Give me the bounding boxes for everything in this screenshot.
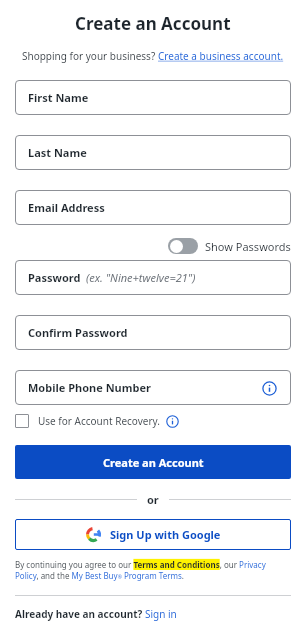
button[interactable]: Show Passwords	[15, 238, 291, 254]
staticText: or	[147, 492, 159, 507]
button[interactable]: Create a business account.	[158, 49, 284, 63]
button[interactable]: Account recovery information	[165, 414, 179, 428]
button[interactable]: Use for Account Recovery.	[15, 414, 179, 428]
staticText: Password (ex. "Nine+twelve=21")	[28, 270, 278, 285]
staticText: Email Address	[28, 200, 278, 215]
button[interactable]: More information	[260, 379, 278, 397]
button[interactable]: Email Address	[15, 190, 291, 225]
staticText: Use for Account Recovery.	[38, 414, 160, 428]
staticText: Confirm Password	[28, 325, 278, 340]
staticText: By continuing you agree to our Terms and…	[15, 559, 291, 582]
button[interactable]: Last Name	[15, 135, 291, 170]
staticText: Create a business account.	[158, 49, 284, 63]
staticText: Mobile Phone Number	[28, 380, 260, 395]
staticText: Show Passwords	[205, 239, 291, 254]
button[interactable]: Sign in	[145, 607, 177, 621]
staticText: First Name	[28, 90, 278, 105]
staticText: Shopping for your business?	[22, 49, 158, 63]
staticText: Sign in	[145, 607, 177, 621]
button[interactable]: Mobile Phone Number	[15, 370, 291, 405]
button[interactable]: Sign Up with Google	[15, 519, 291, 550]
staticText: Create an Account	[103, 455, 204, 470]
staticText: Last Name	[28, 145, 278, 160]
staticText: Create an Account	[75, 12, 231, 35]
button[interactable]: Confirm Password	[15, 315, 291, 350]
button[interactable]: Create an Account	[15, 445, 291, 479]
button[interactable]: First Name	[15, 80, 291, 115]
staticText: Sign Up with Google	[110, 527, 221, 542]
staticText: Already have an account?	[15, 607, 145, 621]
button[interactable]: Password (ex. "Nine+twelve=21")	[15, 260, 291, 295]
